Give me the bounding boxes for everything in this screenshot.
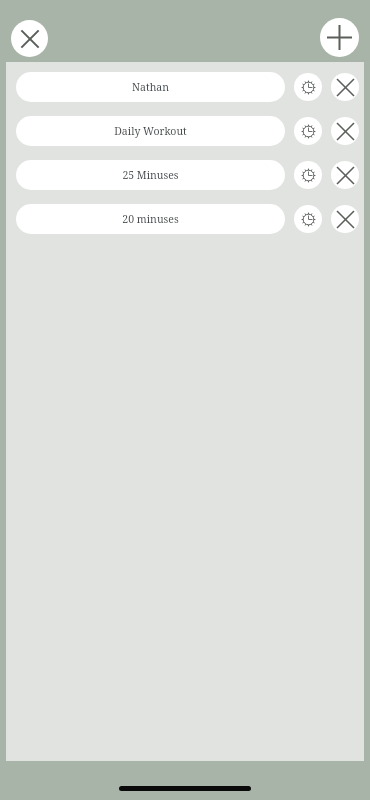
- button[interactable]: Settings: [294, 205, 322, 233]
- button[interactable]: Remove: [331, 205, 359, 233]
- button[interactable]: Daily Workout: [16, 116, 285, 146]
- staticText: Daily Workout: [114, 124, 187, 138]
- button[interactable]: 20 minuses: [16, 204, 285, 234]
- button[interactable]: Nathan: [16, 72, 285, 102]
- staticText: 25 Minuses: [122, 168, 179, 182]
- staticText: 20 minuses: [122, 212, 179, 226]
- button[interactable]: Settings: [294, 161, 322, 189]
- button[interactable]: Add: [320, 18, 359, 57]
- staticText: Nathan: [132, 80, 169, 94]
- button[interactable]: Settings: [294, 117, 322, 145]
- button[interactable]: Remove: [331, 73, 359, 101]
- button[interactable]: Remove: [331, 161, 359, 189]
- button[interactable]: Close: [11, 20, 48, 57]
- button[interactable]: Settings: [294, 73, 322, 101]
- button[interactable]: 25 Minuses: [16, 160, 285, 190]
- button[interactable]: Remove: [331, 117, 359, 145]
